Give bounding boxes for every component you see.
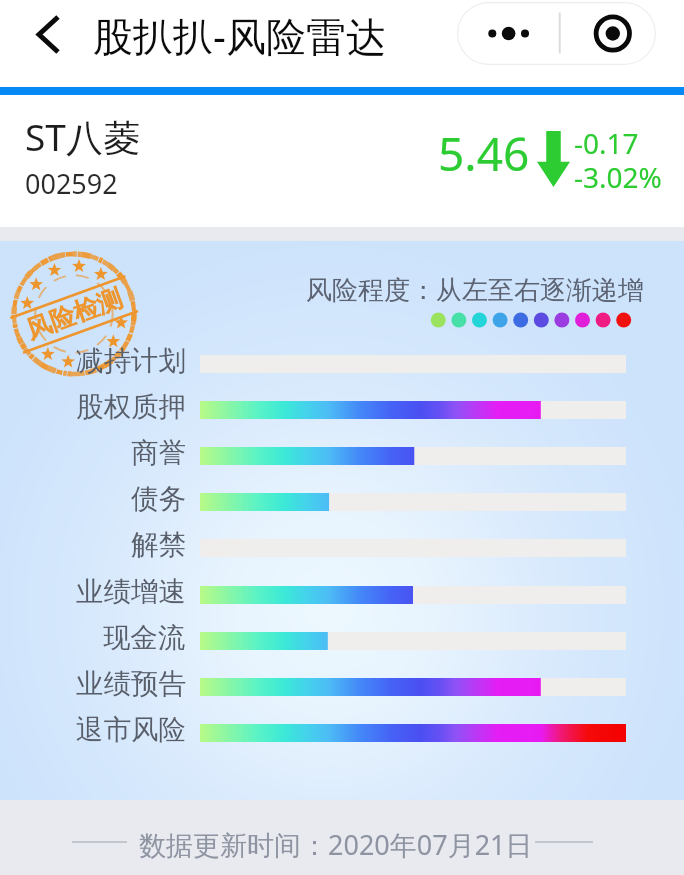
staticText: 业绩预告 — [76, 667, 186, 702]
staticText: 002592 — [25, 165, 118, 202]
staticText: 商誉 — [131, 436, 186, 471]
button[interactable]: 现金流 — [0, 618, 684, 664]
staticText: ST八菱 — [25, 111, 140, 162]
staticText: 股扒扒-风险雷达 — [93, 8, 386, 63]
staticText: 业绩增速 — [76, 575, 186, 610]
button[interactable]: Back — [21, 7, 75, 61]
button[interactable]: 退市风险 — [0, 710, 684, 756]
staticText: 5.46 — [438, 122, 530, 185]
button[interactable]: 债务 — [0, 479, 684, 525]
staticText: -0.17 — [574, 124, 639, 162]
staticText: 解禁 — [131, 528, 186, 563]
staticText: 退市风险 — [76, 713, 186, 748]
staticText: -3.02% — [574, 158, 662, 196]
button[interactable]: 解禁 — [0, 525, 684, 571]
staticText: 债务 — [131, 482, 186, 517]
staticText: 数据更新时间：2020年07月21日 — [139, 826, 533, 863]
button[interactable]: More options — [457, 2, 656, 65]
staticText: 风险程度：从左至右逐渐递增 — [306, 274, 644, 307]
button[interactable]: 股权质押 — [0, 387, 684, 433]
button[interactable]: 减持计划 — [0, 341, 684, 387]
button[interactable]: 商誉 — [0, 433, 684, 479]
staticText: 股权质押 — [76, 390, 186, 425]
staticText: 现金流 — [103, 621, 186, 656]
staticText: 减持计划 — [76, 344, 186, 379]
button[interactable]: 业绩预告 — [0, 664, 684, 710]
button[interactable]: 业绩增速 — [0, 572, 684, 618]
